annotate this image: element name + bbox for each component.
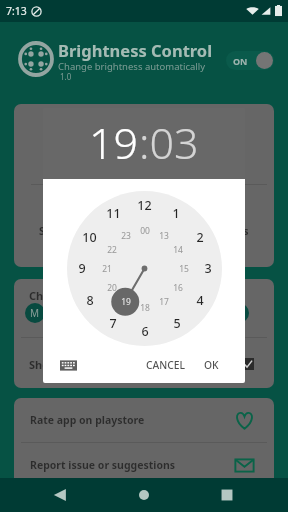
staticText: :03 (139, 113, 199, 172)
staticText: 9 (78, 260, 86, 277)
staticText: 12 (137, 197, 152, 214)
button[interactable]: S (195, 303, 215, 323)
button[interactable]: S (229, 303, 249, 323)
button[interactable]: Home (130, 481, 158, 509)
staticText: Check for updates (29, 288, 129, 303)
staticText: Levels (216, 224, 249, 238)
staticText: M (30, 306, 40, 320)
staticText: 5 (173, 315, 181, 332)
staticText: 3 (204, 260, 212, 277)
staticText: 4 (196, 292, 204, 309)
button[interactable]: Recent apps (213, 481, 241, 509)
staticText: 00 (140, 225, 150, 237)
button[interactable]: Report issue or suggestions (14, 443, 274, 487)
staticText: 16 (173, 282, 183, 294)
staticText: ON (233, 55, 248, 67)
staticText: S (202, 306, 208, 320)
staticText: 19 (121, 296, 131, 308)
button[interactable]: F (161, 303, 181, 323)
staticText: 8 (86, 292, 94, 309)
staticText: 17 (159, 296, 169, 308)
staticText: Show notification (29, 357, 126, 372)
button[interactable]: Back (46, 481, 74, 509)
button[interactable]: Toggle automatic brightness (226, 51, 274, 70)
button[interactable]: Rate app on playstore (14, 398, 274, 442)
button[interactable]: OK (202, 356, 221, 374)
staticText: 13 (159, 230, 169, 242)
button[interactable]: M (25, 303, 45, 323)
staticText: T (134, 306, 140, 320)
staticText: 11 (106, 205, 121, 222)
staticText: Rate app on playstore (30, 413, 145, 427)
staticText: 19 (89, 113, 139, 172)
staticText: Set brightness level (39, 224, 142, 238)
staticText: 23 (121, 230, 131, 242)
staticText: 14 (173, 244, 183, 256)
staticText: Change brightness automatically (58, 60, 206, 73)
staticText: 1 (172, 205, 180, 222)
staticText: 18 (140, 302, 150, 314)
button[interactable]: CANCEL (144, 356, 188, 374)
staticText: 7:13 (6, 4, 27, 18)
staticText: 15 (179, 263, 189, 275)
staticText: Report issue or suggestions (30, 458, 176, 472)
staticText: 10 (82, 229, 97, 246)
staticText: 22 (107, 244, 117, 256)
staticText: 7 (109, 315, 117, 332)
staticText: 20 (107, 282, 117, 294)
staticText: 2 (196, 229, 204, 246)
staticText: 1.0 (60, 71, 72, 82)
staticText: Brightness Control (58, 39, 213, 61)
button[interactable]: T (127, 303, 147, 323)
staticText: 21 (102, 263, 112, 275)
button[interactable]: Switch to keyboard input (60, 357, 77, 374)
button[interactable]: Set brightness level (14, 217, 274, 245)
staticText: 6 (141, 323, 149, 340)
button[interactable]: W (93, 303, 113, 323)
button[interactable]: Show notification (14, 341, 274, 387)
